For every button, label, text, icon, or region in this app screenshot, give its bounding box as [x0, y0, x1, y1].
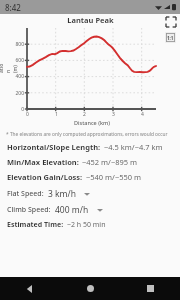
staticText: Distance (km)	[74, 119, 110, 126]
staticText: Estimated Time:	[7, 220, 64, 230]
staticText: 0	[21, 106, 24, 113]
button[interactable]: 400 m/h	[55, 203, 103, 217]
button[interactable]: Back	[0, 277, 60, 300]
staticText: 800	[15, 41, 24, 48]
button[interactable]: Recent apps	[120, 277, 180, 300]
staticText: Elevation Gain/Loss:	[7, 172, 83, 182]
staticText: Elevation (m)	[0, 63, 19, 73]
staticText: Min/Max Elevation:	[7, 157, 79, 167]
button[interactable]: Home	[60, 277, 120, 300]
staticText: ~540 m/~550 m	[86, 172, 142, 182]
button[interactable]: 3 km/h	[48, 187, 90, 201]
staticText: Climb Speed:	[7, 205, 51, 215]
staticText: 3 km/h	[48, 188, 76, 200]
button[interactable]: Reset chart to 1:1 aspect ratio	[165, 32, 176, 43]
staticText: 2	[83, 111, 86, 118]
staticText: 400 m/h	[55, 204, 89, 216]
staticText: 1:1	[167, 35, 174, 41]
staticText: ~2 h 50 min	[67, 220, 106, 230]
button[interactable]: Expand chart to fullscreen	[164, 15, 177, 28]
staticText: 1	[55, 111, 58, 118]
staticText: Flat Speed:	[7, 189, 44, 199]
staticText: 200	[15, 90, 24, 97]
staticText: 3	[112, 111, 115, 118]
staticText: 0	[26, 111, 29, 118]
staticText: Horizontal/Slope Length:	[7, 142, 101, 152]
staticText: 8:42	[5, 2, 21, 13]
staticText: * The elevations are only computed appro…	[6, 131, 176, 138]
staticText: 600	[15, 57, 24, 64]
staticText: ~452 m/~895 m	[82, 157, 138, 167]
staticText: Lantau Peak	[67, 15, 114, 25]
staticText: ~4.5 km/~4.7 km	[104, 142, 163, 152]
staticText: 400	[15, 73, 24, 80]
staticText: 4	[141, 111, 144, 118]
